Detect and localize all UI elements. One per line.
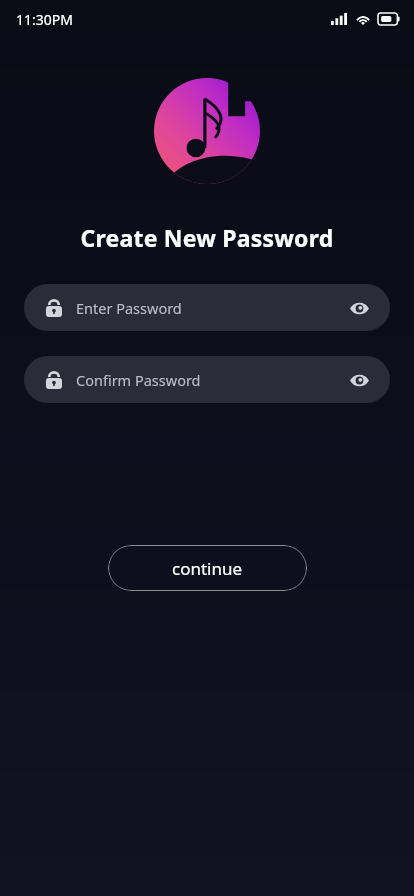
button[interactable]: continue xyxy=(108,545,307,591)
button[interactable]: Toggle password visibility xyxy=(346,295,372,321)
button[interactable]: Enter Password xyxy=(24,284,390,331)
staticText: Enter Password xyxy=(76,298,182,318)
button[interactable]: Confirm Password xyxy=(24,356,390,403)
staticText: 11:30PM xyxy=(16,10,73,29)
button[interactable]: Toggle password visibility xyxy=(346,367,372,393)
staticText: Create New Password xyxy=(0,222,414,253)
staticText: continue xyxy=(172,557,243,580)
staticText: Confirm Password xyxy=(76,370,201,390)
